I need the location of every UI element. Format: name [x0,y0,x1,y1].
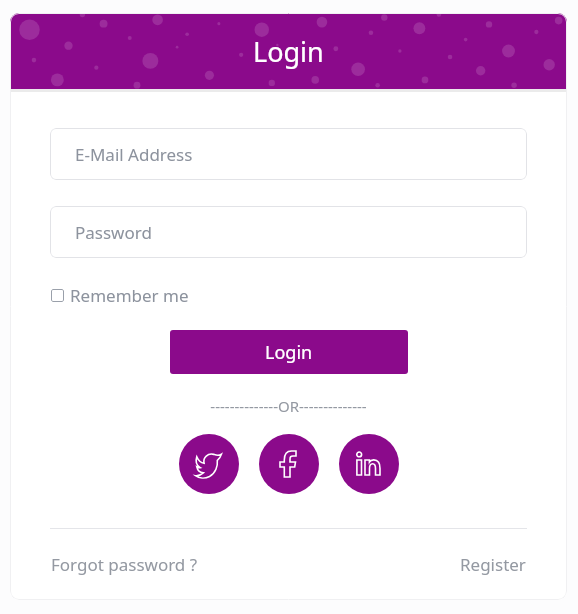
button[interactable]: Forgot password ? [50,551,199,578]
staticText: Remember me [70,284,189,307]
button[interactable]: Register [459,551,527,578]
staticText: Login [265,340,313,365]
staticText: --------------OR-------------- [50,396,527,416]
button[interactable]: E-Mail Address [50,128,527,180]
button[interactable]: Login [170,330,408,374]
button[interactable]: Password [50,206,527,258]
button[interactable]: Twitter [179,434,239,494]
staticText: Login [253,33,324,70]
button[interactable]: Facebook [259,434,319,494]
button[interactable]: Remember me [50,282,190,309]
staticText: Password [75,221,152,244]
staticText: E-Mail Address [75,143,193,166]
staticText: Register [460,553,526,576]
button[interactable]: LinkedIn [339,434,399,494]
staticText: Forgot password ? [51,553,198,576]
